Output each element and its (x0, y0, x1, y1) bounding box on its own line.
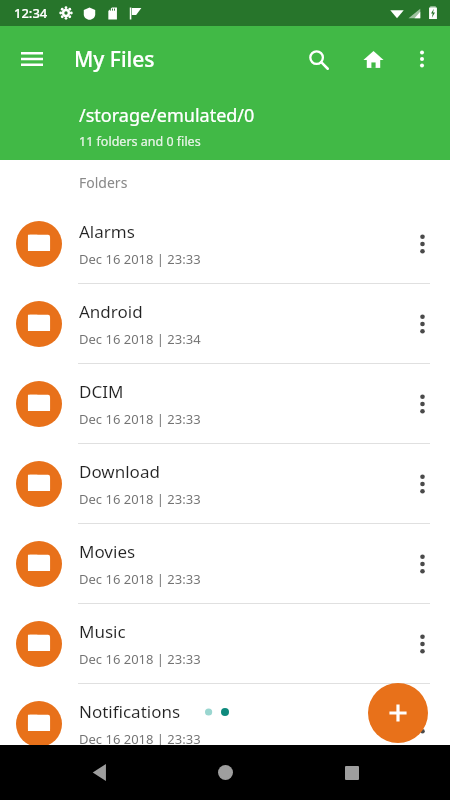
staticText: Notifications (79, 700, 181, 723)
button[interactable]: Notifications (0, 684, 450, 745)
button[interactable]: Search (296, 37, 340, 81)
staticText: Android (79, 300, 143, 323)
button[interactable]: More options for Music (400, 604, 444, 683)
button[interactable]: Movies (0, 524, 450, 603)
staticText: Music (79, 620, 126, 643)
staticText: Download (79, 460, 160, 483)
button[interactable]: More options for Download (400, 444, 444, 523)
button[interactable]: Back (71, 745, 127, 800)
button[interactable]: Add (368, 683, 428, 743)
button[interactable]: Home (197, 745, 253, 800)
button[interactable]: Android (0, 284, 450, 363)
staticText: My Files (74, 45, 155, 74)
button[interactable]: Download (0, 444, 450, 523)
staticText: Dec 16 2018 | 23:34 (79, 330, 201, 348)
button[interactable]: Home (351, 37, 395, 81)
staticText: Dec 16 2018 | 23:33 (79, 410, 201, 428)
button[interactable]: DCIM (0, 364, 450, 443)
staticText: Dec 16 2018 | 23:33 (79, 250, 201, 268)
staticText: Dec 16 2018 | 23:33 (79, 650, 201, 668)
button[interactable]: More options for Movies (400, 524, 444, 603)
staticText: Folders (79, 173, 128, 192)
button[interactable]: Recent apps (324, 745, 380, 800)
button[interactable]: More options for DCIM (400, 364, 444, 443)
staticText: Dec 16 2018 | 23:33 (79, 730, 201, 745)
button[interactable]: More options (400, 37, 444, 81)
staticText: DCIM (79, 380, 124, 403)
button[interactable]: More options for Android (400, 284, 444, 363)
button[interactable]: Alarms (0, 204, 450, 283)
button[interactable]: Music (0, 604, 450, 683)
button[interactable]: More options for Alarms (400, 204, 444, 283)
button[interactable]: /storage/emulated/0 (0, 92, 450, 160)
staticText: Alarms (79, 220, 135, 243)
button[interactable]: Open navigation menu (10, 37, 54, 81)
staticText: Dec 16 2018 | 23:33 (79, 490, 201, 508)
staticText: Movies (79, 540, 136, 563)
staticText: Dec 16 2018 | 23:33 (79, 570, 201, 588)
button[interactable]: More options for Notifications (400, 684, 444, 745)
staticText: 11 folders and 0 files (79, 133, 201, 150)
staticText: /storage/emulated/0 (79, 103, 255, 128)
staticText: 12:34 (14, 4, 48, 22)
